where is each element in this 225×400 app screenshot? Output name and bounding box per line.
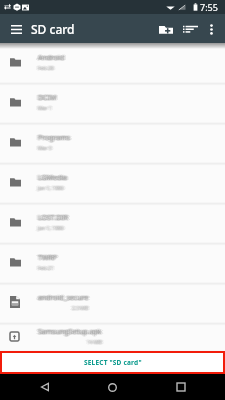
button[interactable]: Programs bbox=[0, 123, 225, 163]
staticText: Feb 21 bbox=[39, 264, 55, 271]
staticText: Mar 1 bbox=[37, 106, 51, 113]
staticText: Feb 28 bbox=[38, 66, 54, 73]
staticText: TWRP bbox=[39, 252, 58, 262]
staticText: Feb 21 bbox=[39, 265, 55, 272]
staticText: 2.3 MB bbox=[72, 304, 89, 311]
button[interactable]: Sort bbox=[178, 17, 202, 41]
staticText: Mar 1 bbox=[38, 104, 52, 111]
staticText: 2.3 MB bbox=[72, 306, 89, 313]
staticText: Jan 1, 1980 bbox=[38, 185, 64, 192]
staticText: Mar 3 bbox=[39, 144, 53, 151]
staticText: Mar 3 bbox=[37, 145, 51, 152]
staticText: LOST.DIR bbox=[37, 214, 68, 224]
button[interactable]: LOST.DIR bbox=[0, 203, 225, 243]
staticText: Android bbox=[40, 53, 67, 63]
button[interactable]: LGMedia bbox=[0, 163, 225, 203]
button[interactable]: SamsungSetup.apk bbox=[0, 323, 225, 351]
staticText: Mar 3 bbox=[38, 145, 52, 152]
staticText: Feb 28 bbox=[36, 65, 52, 72]
staticText: TWRP bbox=[38, 254, 57, 264]
staticText: LOST.DIR bbox=[37, 213, 68, 223]
staticText: TWRP bbox=[37, 253, 56, 263]
staticText: DCIM bbox=[39, 92, 58, 102]
staticText: Android bbox=[40, 53, 67, 63]
staticText: Programs bbox=[39, 132, 72, 142]
staticText: DCIM bbox=[37, 93, 56, 103]
staticText: SamsungSetup.apk bbox=[38, 326, 102, 336]
staticText: LGMedia bbox=[37, 172, 66, 182]
staticText: Jan 1, 1980 bbox=[37, 226, 63, 233]
staticText: LOST.DIR bbox=[38, 213, 69, 223]
button[interactable]: More options bbox=[202, 20, 220, 38]
staticText: Mar 1 bbox=[37, 104, 51, 111]
staticText: SamsungSetup.apk bbox=[37, 327, 101, 337]
staticText: Jan 1, 1980 bbox=[38, 224, 64, 231]
staticText: DCIM bbox=[36, 93, 55, 103]
staticText: Mar 1 bbox=[40, 105, 54, 112]
staticText: DCIM bbox=[36, 93, 55, 103]
staticText: Programs bbox=[38, 133, 71, 143]
staticText: 14 MB bbox=[88, 338, 103, 345]
staticText: 2.3 MB bbox=[73, 305, 90, 312]
staticText: SamsungSetup.apk bbox=[38, 328, 102, 338]
staticText: DCIM bbox=[40, 93, 59, 103]
staticText: 2.3 MB bbox=[71, 306, 88, 313]
staticText: Android bbox=[38, 53, 65, 63]
staticText: Programs bbox=[37, 134, 70, 144]
button[interactable]: Create folder bbox=[154, 17, 178, 41]
staticText: Programs bbox=[38, 134, 71, 144]
staticText: Android bbox=[38, 54, 65, 64]
staticText: Feb 28 bbox=[39, 65, 55, 72]
staticText: SamsungSetup.apk bbox=[40, 327, 104, 337]
staticText: SamsungSetup.apk bbox=[37, 328, 101, 338]
button[interactable]: Android bbox=[0, 43, 225, 83]
button[interactable]: Recents bbox=[168, 374, 194, 400]
staticText: LGMedia bbox=[40, 173, 69, 183]
button[interactable]: TWRP bbox=[0, 243, 225, 283]
staticText: Android bbox=[39, 52, 66, 62]
staticText: android_secure bbox=[40, 293, 91, 303]
staticText: Mar 1 bbox=[37, 105, 51, 112]
staticText: Jan 1, 1980 bbox=[37, 186, 63, 193]
staticText: Mar 1 bbox=[38, 106, 52, 113]
staticText: Jan 1, 1980 bbox=[37, 185, 63, 192]
staticText: LOST.DIR bbox=[38, 212, 69, 222]
staticText: Jan 1, 1980 bbox=[36, 185, 62, 192]
staticText: Feb 28 bbox=[37, 66, 53, 73]
staticText: LOST.DIR bbox=[40, 213, 71, 223]
staticText: android_secure bbox=[38, 294, 89, 304]
staticText: LOST.DIR bbox=[40, 213, 71, 223]
staticText: Mar 3 bbox=[37, 144, 51, 151]
staticText: Mar 1 bbox=[36, 105, 50, 112]
button[interactable]: DCIM bbox=[0, 83, 225, 123]
staticText: 14 MB bbox=[89, 339, 104, 346]
staticText: 2.3 MB bbox=[71, 304, 88, 311]
staticText: SamsungSetup.apk bbox=[39, 327, 103, 337]
button[interactable]: SELECT "SD card" bbox=[0, 351, 225, 374]
staticText: Mar 3 bbox=[36, 145, 50, 152]
staticText: android_secure bbox=[40, 293, 91, 303]
button[interactable]: Home bbox=[99, 374, 125, 400]
staticText: android_secure bbox=[38, 294, 89, 304]
staticText: DCIM bbox=[39, 93, 58, 103]
staticText: Feb 28 bbox=[38, 64, 54, 71]
staticText: Android bbox=[39, 54, 66, 64]
staticText: SamsungSetup.apk bbox=[38, 328, 102, 338]
staticText: Mar 3 bbox=[38, 146, 52, 153]
staticText: DCIM bbox=[38, 94, 57, 104]
staticText: android_secure bbox=[37, 294, 88, 304]
staticText: Jan 1, 1980 bbox=[38, 225, 64, 232]
staticText: Android bbox=[36, 53, 63, 63]
staticText: SamsungSetup.apk bbox=[39, 328, 103, 338]
staticText: SELECT "SD card" bbox=[84, 358, 142, 367]
staticText: 14 MB bbox=[87, 338, 102, 345]
staticText: LOST.DIR bbox=[39, 214, 70, 224]
staticText: Android bbox=[39, 53, 66, 63]
button[interactable]: Open navigation drawer bbox=[5, 18, 27, 40]
button[interactable]: Back bbox=[32, 374, 58, 400]
staticText: LGMedia bbox=[37, 173, 66, 183]
staticText: LOST.DIR bbox=[37, 212, 68, 222]
staticText: Feb 21 bbox=[36, 265, 52, 272]
staticText: Mar 1 bbox=[38, 105, 52, 112]
button[interactable]: android_secure bbox=[0, 283, 225, 323]
